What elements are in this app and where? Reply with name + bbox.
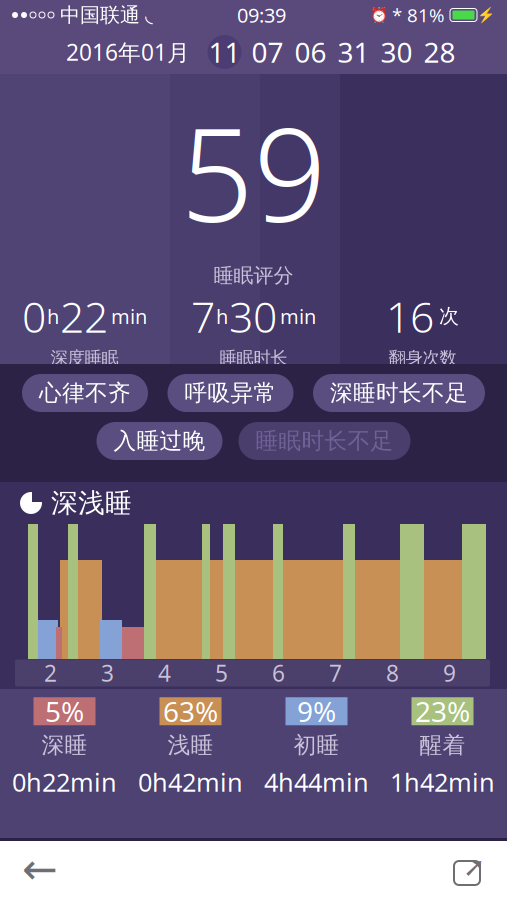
staticText: 翻身次数 bbox=[388, 347, 456, 369]
button[interactable]: 28 bbox=[418, 31, 461, 73]
staticText: 09:39 bbox=[237, 2, 286, 28]
staticText: 5 bbox=[215, 658, 228, 688]
button[interactable]: 06 bbox=[289, 31, 332, 73]
staticText: min bbox=[111, 303, 147, 329]
staticText: ← bbox=[22, 845, 58, 893]
staticText: 9% bbox=[297, 693, 336, 730]
button[interactable]: 深睡时长不足 bbox=[313, 374, 485, 412]
staticText: 11 bbox=[208, 33, 240, 71]
staticText: 呼吸异常 bbox=[184, 379, 276, 407]
staticText: 31 bbox=[337, 33, 369, 71]
button[interactable]: 心律不齐 bbox=[22, 374, 148, 412]
staticText: 22 bbox=[60, 288, 108, 344]
button[interactable]: Back bbox=[10, 840, 70, 898]
staticText: 7 bbox=[329, 658, 342, 688]
button[interactable]: 07 bbox=[246, 31, 289, 73]
staticText: ➚ bbox=[463, 852, 485, 882]
staticText: 0h22min bbox=[12, 765, 117, 799]
staticText: 5% bbox=[45, 693, 84, 730]
staticText: 30 bbox=[229, 288, 277, 344]
staticText: ⏰ bbox=[370, 7, 388, 23]
staticText: 0 bbox=[22, 288, 46, 344]
staticText: 次 bbox=[439, 304, 459, 328]
button[interactable]: 31 bbox=[332, 31, 375, 73]
staticText: 7 bbox=[191, 288, 215, 344]
staticText: 深度睡眠 bbox=[50, 347, 118, 369]
button[interactable]: Share bbox=[437, 840, 497, 898]
staticText: 初睡 bbox=[293, 731, 339, 759]
staticText: 4 bbox=[158, 658, 171, 688]
staticText: 深睡 bbox=[41, 731, 87, 759]
staticText: ⚡ bbox=[477, 7, 495, 23]
staticText: 心律不齐 bbox=[39, 379, 131, 407]
staticText: 9 bbox=[443, 658, 456, 688]
staticText: 07 bbox=[251, 33, 283, 71]
staticText: 81% bbox=[407, 3, 445, 27]
staticText: 6 bbox=[272, 658, 285, 688]
staticText: 59 bbox=[180, 87, 326, 257]
staticText: 入睡过晚 bbox=[113, 427, 205, 455]
staticText: 深睡时长不足 bbox=[330, 379, 468, 407]
staticText: 8 bbox=[386, 658, 399, 688]
staticText: 0h42min bbox=[138, 765, 243, 799]
staticText: 23% bbox=[415, 693, 470, 730]
staticText: 睡眠时长不足 bbox=[255, 427, 393, 455]
staticText: 深浅睡 bbox=[51, 487, 132, 519]
staticText: 中国联通 bbox=[60, 3, 140, 27]
staticText: 28 bbox=[423, 33, 455, 71]
staticText: 3 bbox=[101, 658, 114, 688]
staticText: 2016年01月 bbox=[66, 37, 190, 67]
staticText: 63% bbox=[163, 693, 218, 730]
button[interactable]: 30 bbox=[375, 31, 418, 73]
staticText: min bbox=[280, 303, 316, 329]
staticText: 1h42min bbox=[390, 765, 495, 799]
staticText: 06 bbox=[294, 33, 326, 71]
staticText: h bbox=[47, 303, 59, 329]
button[interactable]: 呼吸异常 bbox=[167, 374, 293, 412]
staticText: 醒着 bbox=[419, 731, 465, 759]
staticText: 4h44min bbox=[264, 765, 369, 799]
staticText: 30 bbox=[380, 33, 412, 71]
staticText: ◟ bbox=[145, 4, 153, 26]
button[interactable]: 睡眠时长不足 bbox=[238, 422, 410, 460]
staticText: 2 bbox=[44, 658, 57, 688]
staticText: 16 bbox=[386, 288, 434, 344]
button[interactable]: 入睡过晚 bbox=[96, 422, 222, 460]
staticText: 睡眠时长 bbox=[219, 347, 287, 369]
staticText: * bbox=[392, 3, 402, 27]
staticText: 睡眠评分 bbox=[213, 263, 293, 288]
button[interactable]: 11 bbox=[203, 31, 246, 73]
staticText: h bbox=[216, 303, 228, 329]
staticText: 浅睡 bbox=[167, 731, 213, 759]
